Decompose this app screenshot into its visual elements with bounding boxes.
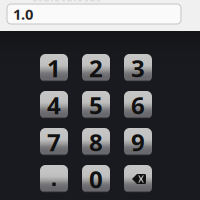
button[interactable]: 2	[82, 54, 110, 82]
button[interactable]: 3	[124, 54, 152, 82]
staticText: 2	[89, 52, 103, 84]
button[interactable]: 1	[40, 54, 68, 82]
button[interactable]: 0	[82, 165, 110, 193]
staticText: 9	[131, 126, 145, 158]
button[interactable]: 9	[124, 128, 152, 156]
button[interactable]: 8	[82, 128, 110, 156]
button[interactable]: 7	[40, 128, 68, 156]
staticText: 8	[89, 126, 103, 158]
staticText: 6	[131, 89, 145, 121]
button[interactable]: 4	[40, 91, 68, 119]
button[interactable]: Delete	[124, 165, 152, 193]
staticText: 5	[89, 89, 103, 121]
staticText: 0	[89, 163, 103, 195]
staticText: 1	[47, 52, 61, 84]
staticText: 1.0	[13, 4, 33, 24]
button[interactable]: 5	[82, 91, 110, 119]
staticText: 7	[47, 126, 61, 158]
button[interactable]: Decimal point	[40, 165, 68, 193]
staticText: 3	[131, 52, 145, 84]
button[interactable]: 6	[124, 91, 152, 119]
staticText: 4	[47, 89, 61, 121]
